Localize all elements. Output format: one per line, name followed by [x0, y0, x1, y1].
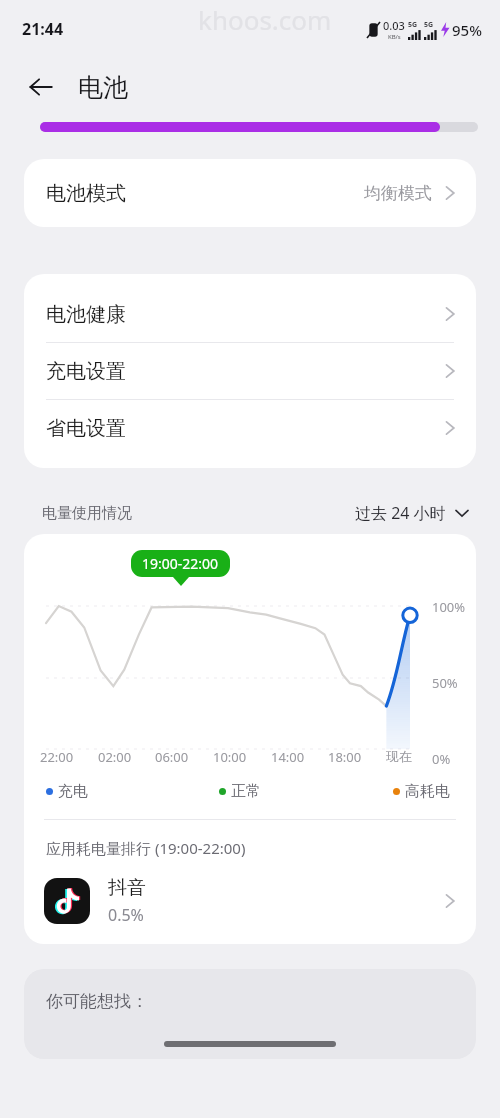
staticText: 高耗电 — [405, 782, 450, 801]
button[interactable]: 电池模式 — [24, 159, 476, 227]
button[interactable]: Back — [18, 64, 64, 110]
button[interactable]: 过去 24 小时 — [355, 502, 470, 524]
button[interactable]: 省电设置 — [24, 400, 476, 456]
staticText: KB/s — [388, 33, 401, 41]
staticText: 充电设置 — [46, 359, 126, 384]
staticText: 电池 — [78, 72, 128, 103]
staticText: 10:00 — [213, 748, 259, 766]
staticText: 均衡模式 — [364, 183, 432, 204]
button[interactable]: 抖音 — [24, 872, 476, 930]
staticText: 5G — [424, 20, 434, 30]
staticText: 14:00 — [271, 748, 317, 766]
staticText: 50% — [432, 674, 458, 692]
staticText: 电池健康 — [46, 302, 126, 327]
staticText: 你可能想找： — [46, 991, 148, 1012]
button[interactable]: 电池健康 — [24, 286, 476, 342]
staticText: 应用耗电量排行 (19:00-22:00) — [46, 838, 246, 858]
staticText: 0.5% — [108, 904, 144, 926]
staticText: 充电 — [58, 782, 88, 801]
staticText: 电量使用情况 — [42, 504, 132, 523]
staticText: 5G — [408, 20, 418, 30]
staticText: 正常 — [231, 782, 261, 801]
staticText: 21:44 — [22, 18, 64, 40]
staticText: 06:00 — [155, 748, 201, 766]
staticText: 19:00-22:00 — [142, 554, 219, 573]
staticText: 100% — [432, 598, 466, 616]
staticText: 18:00 — [328, 748, 374, 766]
staticText: 抖音 — [108, 876, 146, 900]
staticText: 电池模式 — [46, 181, 126, 206]
staticText: 现在 — [386, 748, 432, 764]
staticText: 0.03 — [383, 18, 405, 33]
staticText: 0% — [432, 750, 451, 768]
staticText: 省电设置 — [46, 416, 126, 441]
button[interactable]: 充电设置 — [24, 343, 476, 399]
staticText: 过去 24 小时 — [355, 502, 446, 524]
staticText: 02:00 — [98, 748, 144, 766]
staticText: 95% — [452, 20, 482, 40]
staticText: khoos.com — [198, 2, 332, 37]
staticText: 22:00 — [40, 748, 86, 766]
